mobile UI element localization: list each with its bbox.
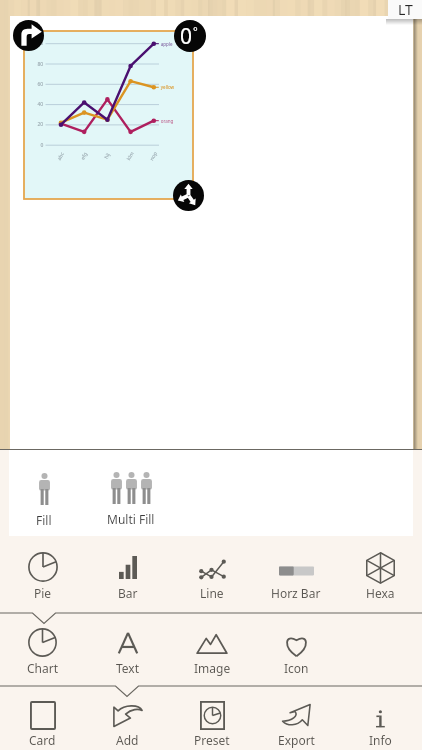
staticText: 0 <box>180 22 193 51</box>
button[interactable]: Rotation 0 degrees <box>174 20 206 52</box>
button[interactable]: LT <box>388 0 422 19</box>
staticText: Hexa <box>366 585 395 601</box>
button[interactable]: Fill <box>14 473 74 528</box>
staticText: ° <box>193 23 198 38</box>
staticText: LT <box>398 0 413 19</box>
staticText: Preset <box>194 732 230 748</box>
staticText: Horz Bar <box>271 585 321 601</box>
staticText: Export <box>278 732 315 748</box>
staticText: Pie <box>34 585 52 601</box>
button[interactable]: Multi Fill <box>101 472 161 527</box>
staticText: Bar <box>118 585 138 601</box>
button[interactable]: Preset <box>170 687 254 750</box>
staticText: Chart <box>27 660 59 676</box>
staticText: Info <box>369 732 392 748</box>
staticText: Text <box>116 660 140 676</box>
button[interactable]: Bar <box>85 536 170 613</box>
button[interactable]: Rotate left <box>13 20 44 51</box>
button[interactable]: Icon <box>254 614 338 686</box>
button[interactable]: Resize <box>173 180 204 211</box>
button[interactable]: Text <box>85 614 170 686</box>
button[interactable]: Line <box>170 536 254 613</box>
button[interactable]: Chart <box>0 614 85 686</box>
staticText: Multi Fill <box>107 511 155 527</box>
button[interactable]: Pie <box>0 536 85 613</box>
button[interactable]: Image <box>170 614 254 686</box>
staticText: Line <box>200 585 224 601</box>
button[interactable]: Card <box>0 687 85 750</box>
staticText: Image <box>194 660 231 676</box>
button[interactable]: Hexa <box>338 536 422 613</box>
button[interactable]: Info <box>338 687 422 750</box>
staticText: Fill <box>36 512 52 528</box>
button[interactable]: Add <box>85 687 170 750</box>
staticText: Card <box>29 732 56 748</box>
staticText: Add <box>116 732 139 748</box>
staticText: Icon <box>284 660 309 676</box>
button[interactable]: Horz Bar <box>254 536 338 613</box>
button[interactable]: Export <box>254 687 338 750</box>
